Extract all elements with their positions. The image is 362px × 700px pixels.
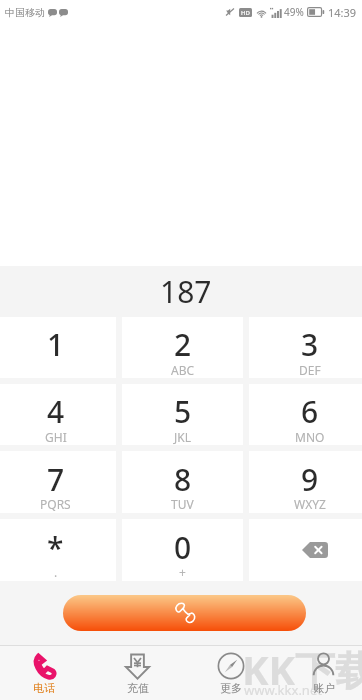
staticText: JKL (174, 429, 191, 445)
staticText: 中国移动 (5, 6, 45, 19)
staticText: 5 (174, 391, 192, 432)
staticText: MNO (295, 429, 325, 445)
staticText: 14:39 (328, 5, 357, 20)
button[interactable]: 2 (122, 317, 243, 378)
button[interactable]: Delete (249, 519, 362, 581)
staticText: 187 (160, 271, 212, 312)
staticText: 更多 (220, 681, 242, 695)
staticText: DEF (299, 362, 321, 378)
button[interactable]: 8 (122, 451, 243, 513)
button[interactable]: 3 (249, 317, 362, 378)
button[interactable]: 0 (122, 519, 243, 581)
staticText: . (54, 564, 58, 580)
staticText: 电话 (33, 681, 55, 695)
button[interactable]: 6 (249, 384, 362, 445)
button[interactable]: 更多 (184, 646, 277, 700)
staticText: 1 (47, 324, 65, 365)
staticText: 8 (174, 459, 192, 500)
staticText: PQRS (40, 496, 71, 512)
staticText: 账户 (313, 681, 335, 695)
staticText: * (47, 527, 64, 568)
staticText: ABC (171, 362, 195, 378)
staticText: 充值 (127, 681, 149, 695)
staticText: + (179, 564, 186, 580)
button[interactable]: 充值 (91, 646, 184, 700)
staticText: KK下载 (242, 642, 362, 696)
button[interactable]: 1 (0, 317, 116, 378)
staticText: www.kkx.net (244, 681, 322, 699)
staticText: WXYZ (294, 496, 326, 512)
button[interactable]: 电话 (0, 646, 91, 700)
other: Delete (302, 542, 328, 558)
staticText: 0 (174, 527, 192, 568)
staticText: 7 (47, 459, 65, 500)
staticText: TUV (171, 496, 194, 512)
button[interactable]: 9 (249, 451, 362, 513)
staticText: 6 (301, 391, 319, 432)
staticText: GHI (45, 429, 67, 445)
staticText: 4 (47, 391, 65, 432)
button[interactable]: 账户 (277, 646, 362, 700)
staticText: 2 (174, 324, 192, 365)
staticText: 3 (301, 324, 319, 365)
button[interactable]: * (0, 519, 116, 581)
staticText: HD (241, 9, 250, 17)
button[interactable]: Call (63, 595, 306, 631)
button[interactable]: 7 (0, 451, 116, 513)
button[interactable]: 5 (122, 384, 243, 445)
button[interactable]: 4 (0, 384, 116, 445)
staticText: 9 (301, 459, 319, 500)
staticText: 49% (284, 5, 304, 19)
